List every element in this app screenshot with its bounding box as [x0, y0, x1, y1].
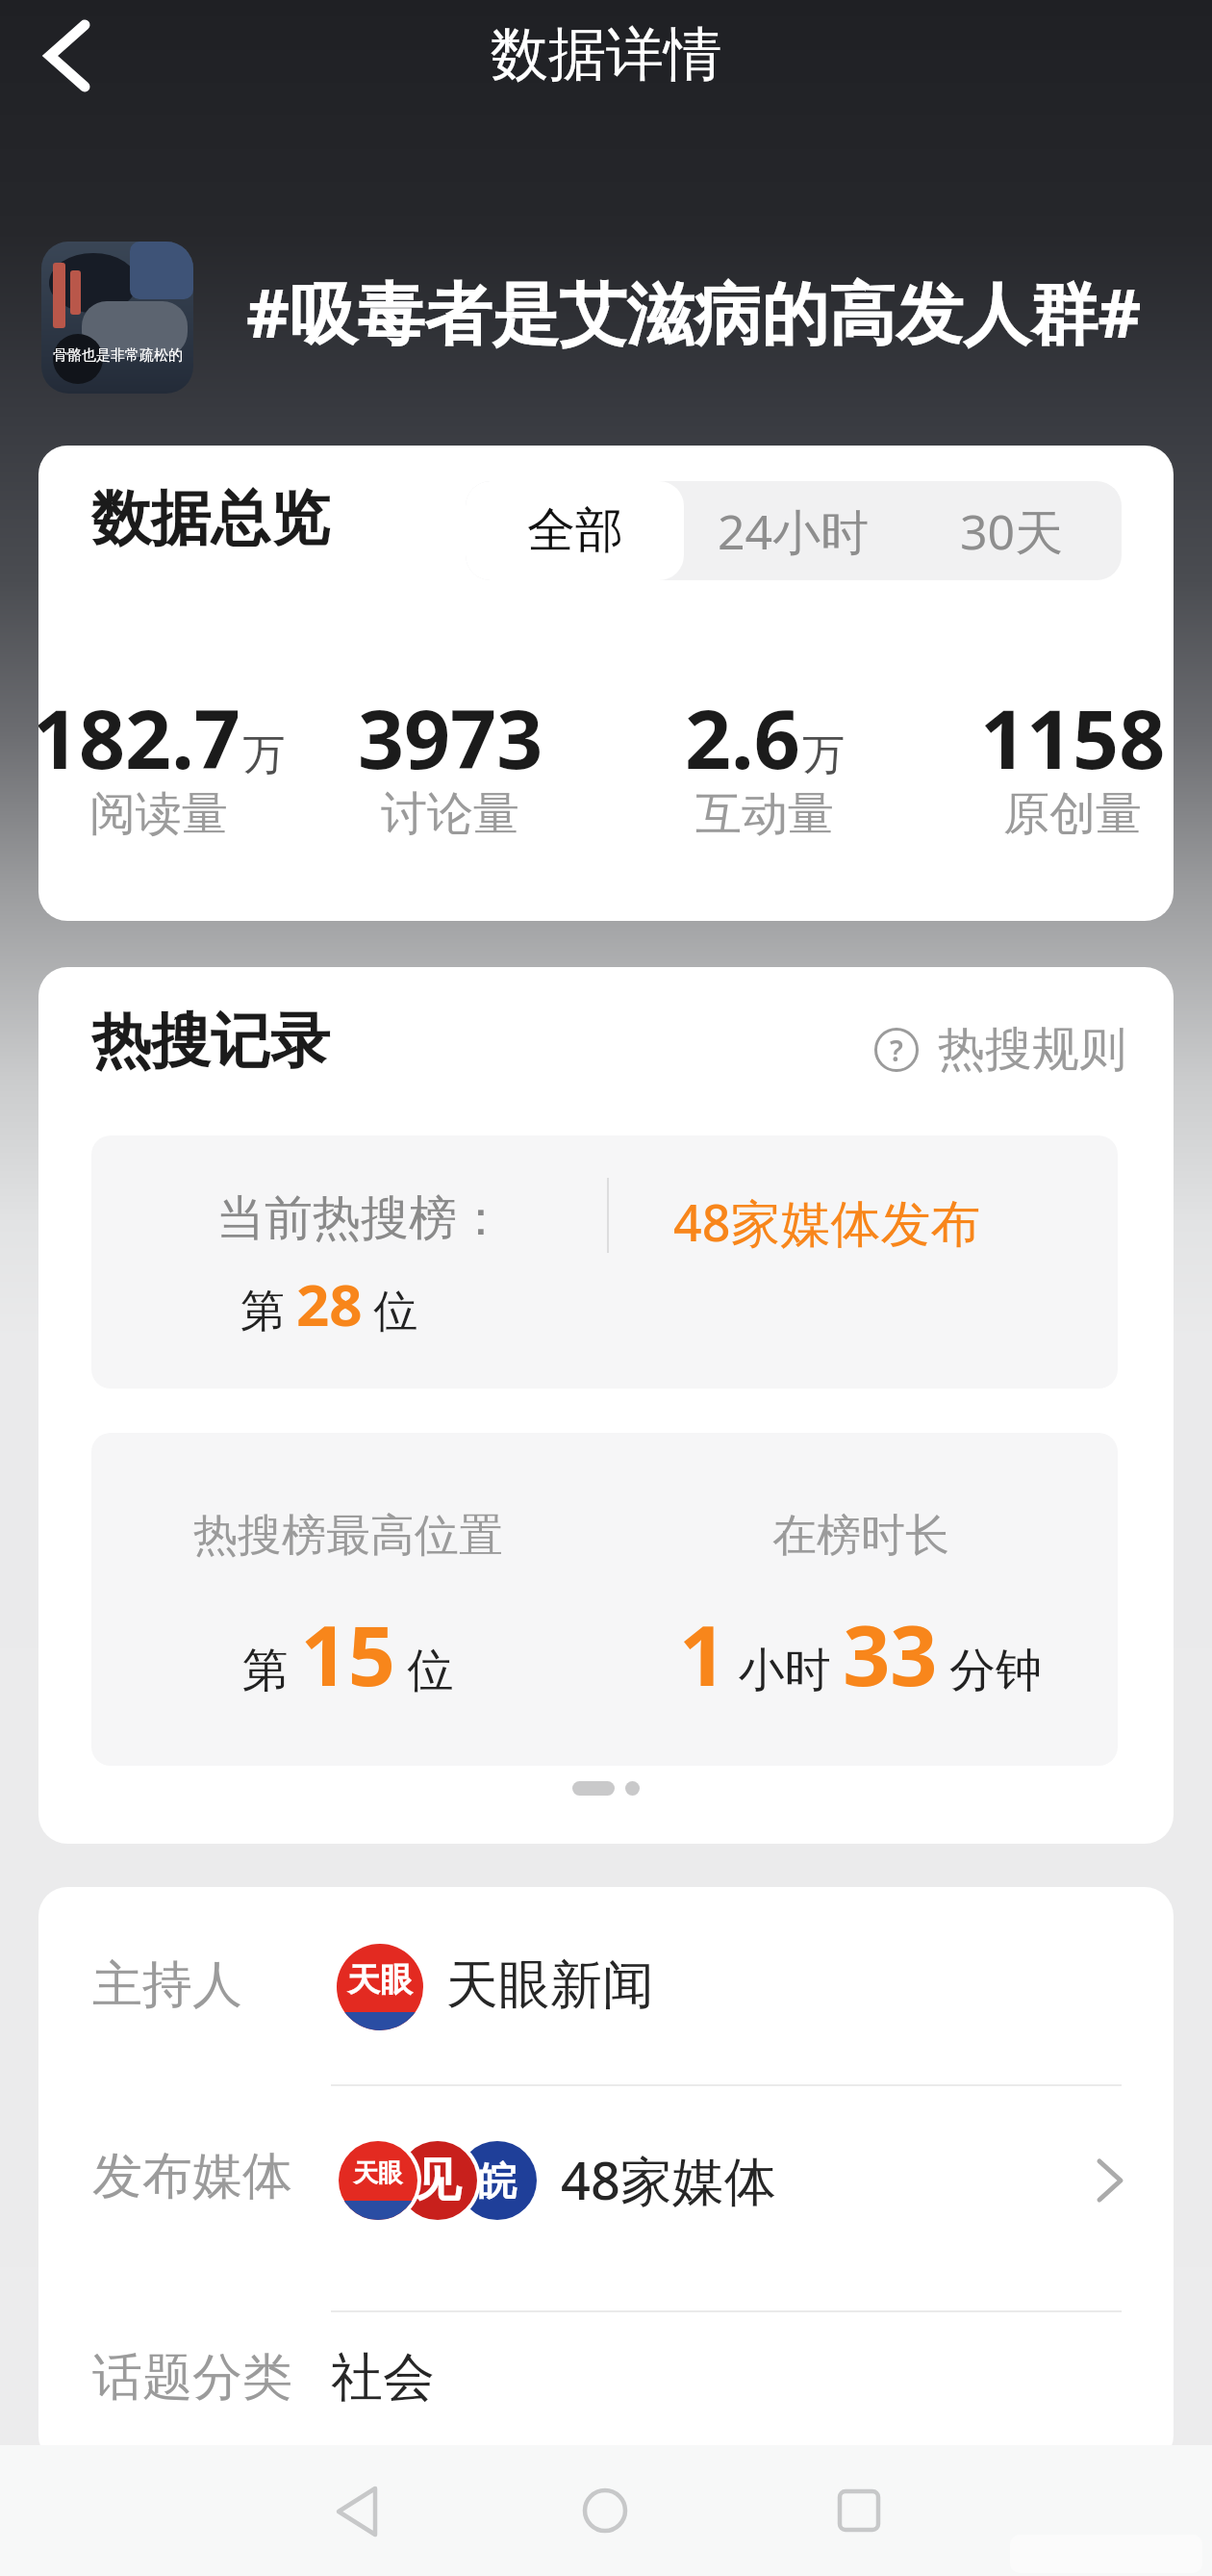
- button[interactable]: 骨骼也是非常疏松的: [41, 242, 193, 394]
- staticText: 皖: [478, 2156, 517, 2205]
- staticText: 第 15 位: [242, 1597, 454, 1710]
- staticText: 48家媒体发布: [673, 1187, 981, 1256]
- staticText: 热搜记录: [91, 1004, 330, 1079]
- staticText: 24小时: [718, 498, 870, 564]
- button[interactable]: [583, 2488, 627, 2533]
- staticText: 当前热搜榜：: [216, 1188, 505, 1249]
- button[interactable]: 皖: [38, 1887, 1174, 1974]
- staticText: 热搜规则: [938, 1020, 1126, 1080]
- staticText: 互动量: [695, 785, 834, 843]
- button[interactable]: ?: [874, 1020, 1126, 1080]
- staticText: 话题分类: [92, 2346, 292, 2410]
- staticText: 2.6 万: [685, 682, 846, 792]
- button[interactable]: [42, 19, 92, 92]
- staticText: 天眼新闻: [446, 1952, 654, 2018]
- staticText: 热搜榜最高位置: [193, 1508, 503, 1564]
- staticText: 全部: [527, 500, 623, 561]
- button[interactable]: [838, 2489, 880, 2532]
- staticText: 主持人: [92, 1953, 242, 2017]
- button[interactable]: 24小时: [684, 481, 902, 580]
- staticText: ?: [890, 1031, 903, 1070]
- staticText: 182.7 万: [38, 682, 286, 792]
- button[interactable]: [329, 2485, 385, 2540]
- staticText: 阅读量: [89, 785, 228, 843]
- staticText: 1158: [980, 682, 1166, 792]
- staticText: 骨骼也是非常疏松的: [53, 346, 183, 365]
- staticText: 数据详情: [491, 18, 721, 91]
- staticText: 1 小时 33 分钟: [679, 1597, 1043, 1710]
- staticText: 原创量: [1003, 785, 1142, 843]
- button[interactable]: 全部: [466, 481, 684, 580]
- staticText: 天眼: [353, 2157, 403, 2189]
- button[interactable]: 天眼: [337, 1944, 423, 2030]
- staticText: 数据总览: [91, 481, 330, 556]
- staticText: 30天: [960, 498, 1064, 564]
- staticText: 见: [415, 2152, 461, 2209]
- staticText: 发布媒体: [92, 2145, 292, 2208]
- staticText: 天眼: [347, 1959, 413, 2001]
- button[interactable]: 30天: [902, 481, 1122, 580]
- staticText: 在榜时长: [772, 1508, 949, 1564]
- staticText: 社会: [331, 2345, 435, 2410]
- staticText: #吸毒者是艾滋病的高发人群#: [246, 266, 1142, 358]
- staticText: 第 28 位: [240, 1264, 418, 1343]
- staticText: 3973: [358, 682, 543, 792]
- staticText: 48家媒体: [561, 2144, 776, 2215]
- staticText: 讨论量: [381, 785, 519, 843]
